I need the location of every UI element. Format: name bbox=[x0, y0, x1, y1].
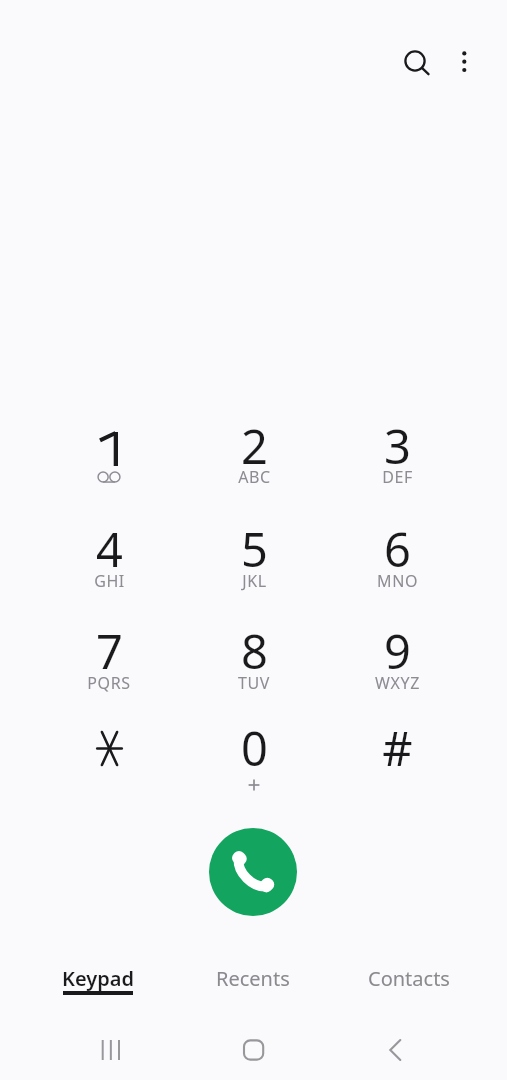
staticText: WXYZ bbox=[375, 672, 420, 694]
staticText: Recents bbox=[216, 965, 290, 992]
button[interactable]: 0 bbox=[182, 708, 326, 808]
button[interactable]: Recent apps bbox=[86, 1026, 134, 1074]
staticText: TUV bbox=[238, 672, 270, 694]
staticText: # bbox=[382, 716, 413, 780]
button[interactable]: 5 bbox=[182, 509, 326, 609]
staticText: 2 bbox=[241, 414, 268, 478]
staticText: 3 bbox=[384, 414, 411, 478]
button[interactable]: Recents bbox=[175, 944, 331, 1008]
button[interactable]: Search bbox=[391, 37, 439, 85]
button[interactable]: Call bbox=[209, 828, 297, 916]
staticText: ABC bbox=[238, 466, 271, 488]
staticText: 7 bbox=[96, 619, 123, 683]
button[interactable]: 3 bbox=[325, 406, 469, 506]
staticText: 6 bbox=[384, 517, 411, 581]
button[interactable]: Keypad bbox=[20, 944, 175, 1008]
staticText: 8 bbox=[241, 619, 268, 683]
button[interactable]: 6 bbox=[325, 509, 469, 609]
staticText: Contacts bbox=[368, 965, 450, 992]
button[interactable]: 7 bbox=[37, 611, 181, 711]
button[interactable]: 4 bbox=[37, 509, 181, 609]
button[interactable] bbox=[37, 708, 181, 808]
button[interactable]: Contacts bbox=[331, 944, 487, 1008]
button[interactable]: 8 bbox=[182, 611, 326, 711]
staticText: PQRS bbox=[87, 672, 131, 694]
staticText: DEF bbox=[382, 466, 413, 488]
button[interactable]: 9 bbox=[325, 611, 469, 711]
staticText: JKL bbox=[242, 570, 267, 592]
staticText: Keypad bbox=[62, 965, 134, 992]
button[interactable]: Back bbox=[376, 1026, 424, 1074]
staticText: GHI bbox=[94, 570, 125, 592]
staticText: MNO bbox=[377, 570, 418, 592]
button[interactable]: # bbox=[325, 708, 469, 808]
staticText: 4 bbox=[96, 517, 123, 581]
button[interactable] bbox=[37, 406, 181, 506]
staticText: 9 bbox=[384, 619, 411, 683]
button[interactable]: Home bbox=[229, 1026, 277, 1074]
button[interactable]: More options bbox=[440, 37, 488, 85]
staticText: 5 bbox=[241, 517, 268, 581]
button[interactable]: 2 bbox=[182, 406, 326, 506]
staticText: 0 bbox=[241, 716, 268, 780]
